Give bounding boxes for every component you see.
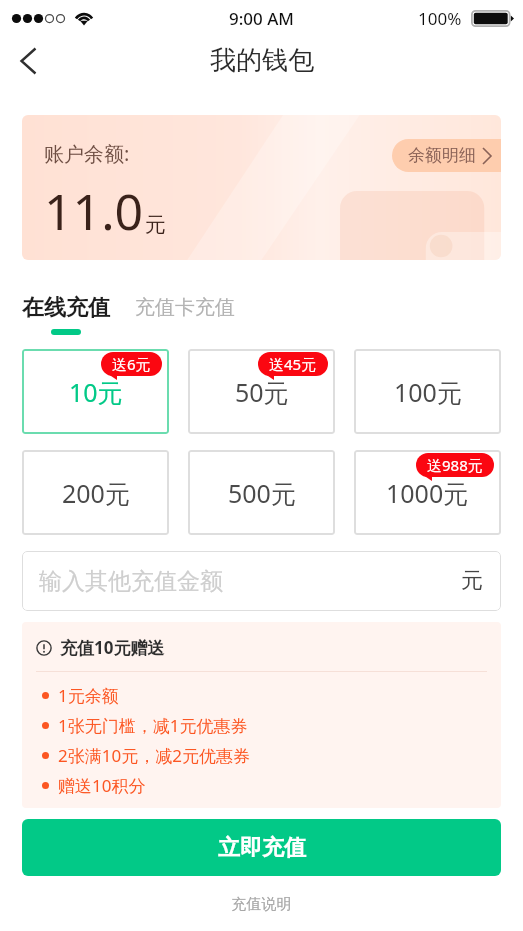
staticText: 200元 [62,476,130,510]
staticText: 送45元 [269,354,317,374]
button[interactable]: 充值说明 [0,895,523,914]
button[interactable]: 充值卡充值 [135,294,235,320]
button[interactable]: 在线充值 [22,294,110,335]
staticText: 元 [461,567,483,595]
staticText: 在线充值 [22,294,110,322]
staticText: 500元 [228,476,296,510]
staticText: 送6元 [112,354,151,374]
staticText: 100元 [394,375,462,409]
staticText: 立即充值 [218,834,306,862]
staticText: 10元 [69,375,123,409]
button[interactable]: 10元 [22,349,169,434]
staticText: 账户余额: [44,140,130,167]
staticText: 9:00 AM [229,7,294,30]
staticText: 余额明细 [408,145,476,166]
staticText: 1000元 [386,476,469,510]
staticText: 50元 [235,375,289,409]
button[interactable]: 输入其他充值金额 [22,551,501,611]
button[interactable]: 100元 [354,349,501,434]
staticText: 输入其他充值金额 [39,567,223,596]
button[interactable]: 200元 [22,450,169,535]
button[interactable]: 余额明细 [392,139,501,172]
staticText: 充值卡充值 [135,295,235,320]
button[interactable]: 50元 [188,349,335,434]
button[interactable]: Back [0,37,56,93]
staticText: 我的钱包 [210,44,314,77]
staticText: 1元余额 [58,684,119,707]
staticText: 充值10元赠送 [60,636,165,659]
staticText: 送988元 [427,455,483,475]
button[interactable]: 立即充值 [22,819,501,876]
staticText: 2张满10元，减2元优惠券 [58,744,250,767]
staticText: 100% [418,7,462,30]
staticText: 1张无门槛，减1元优惠券 [58,714,248,737]
button[interactable]: 500元 [188,450,335,535]
staticText: 11.0 [44,177,144,245]
staticText: 元 [145,212,166,238]
staticText: 赠送10积分 [58,774,146,797]
button[interactable]: 1000元 [354,450,501,535]
